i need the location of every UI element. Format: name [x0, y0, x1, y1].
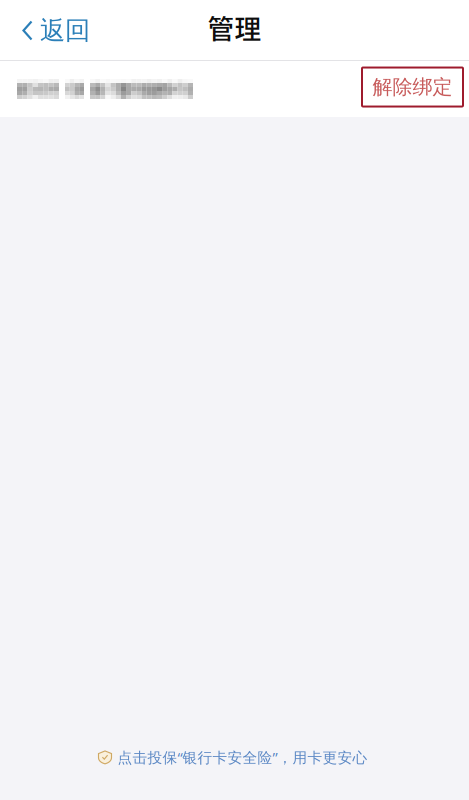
- button[interactable]: 点击投保“银行卡安全险”，用卡更安心: [97, 747, 371, 800]
- button[interactable]: 解除绑定: [362, 67, 463, 106]
- staticText: 点击投保“银行卡安全险”，用卡更安心: [117, 747, 367, 767]
- staticText: 管理: [207, 8, 261, 46]
- staticText: 返回: [40, 15, 90, 46]
- staticText: 解除绑定: [372, 75, 452, 99]
- button[interactable]: 返回: [0, 1, 104, 59]
